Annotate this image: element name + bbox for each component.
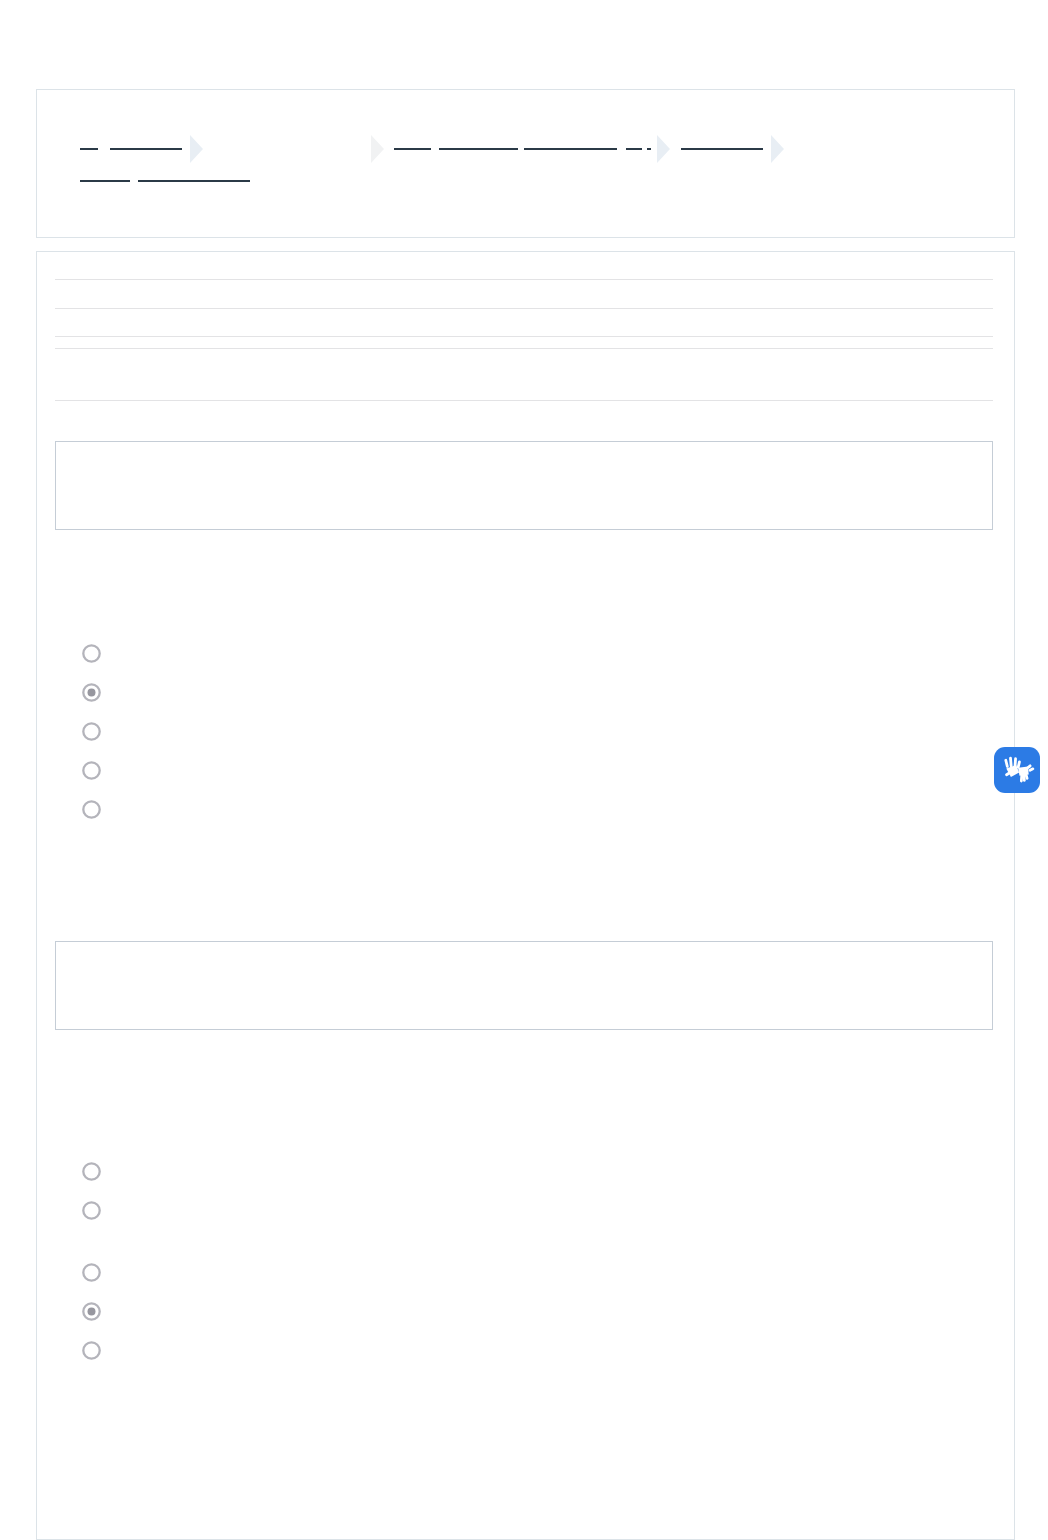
button[interactable] [55, 941, 993, 1030]
button[interactable] [36, 720, 1015, 742]
button[interactable]: Sign language accessibility [994, 747, 1040, 793]
button[interactable] [36, 798, 1015, 820]
button[interactable] [36, 1261, 1015, 1283]
button[interactable] [36, 759, 1015, 781]
button[interactable] [36, 642, 1015, 664]
button[interactable] [36, 1300, 1015, 1322]
button[interactable] [36, 1160, 1015, 1182]
button[interactable] [36, 681, 1015, 703]
button[interactable] [36, 1339, 1015, 1361]
button[interactable] [36, 1199, 1015, 1221]
button[interactable] [55, 441, 993, 530]
